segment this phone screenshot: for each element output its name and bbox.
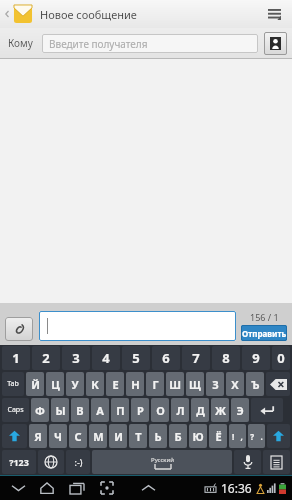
button[interactable]: Ё (209, 424, 227, 448)
button[interactable]: 3 (62, 346, 90, 370)
button[interactable]: Change language (38, 450, 64, 474)
button[interactable]: А (91, 398, 109, 422)
button[interactable]: Voice input (234, 450, 261, 474)
staticText: Ы (55, 403, 66, 418)
staticText: 3 (72, 349, 80, 367)
staticText: Ц (51, 377, 60, 392)
staticText: Ш (169, 377, 181, 392)
staticText: Ж (215, 403, 226, 418)
button[interactable]: О (151, 398, 169, 422)
button[interactable]: В (71, 398, 89, 422)
button[interactable]: :-) (66, 450, 90, 474)
button[interactable]: Ю (189, 424, 207, 448)
button[interactable]: 7 (182, 346, 210, 370)
button[interactable]: Home (32, 477, 62, 499)
button[interactable]: Р (131, 398, 149, 422)
button[interactable]: ?123 (2, 450, 36, 474)
staticText: 9 (252, 349, 260, 367)
button[interactable]: Отправить (241, 325, 287, 341)
button[interactable]: Я (29, 424, 47, 448)
button[interactable]: ! , (229, 424, 246, 448)
staticText: ? . (250, 431, 263, 442)
staticText: Tab (7, 379, 19, 389)
button[interactable]: Н (126, 372, 144, 396)
staticText: Я (34, 429, 42, 444)
button[interactable]: 5 (122, 346, 150, 370)
button[interactable]: More options (262, 2, 286, 26)
button[interactable]: Ь (149, 424, 167, 448)
button[interactable]: Tab (2, 372, 24, 396)
button[interactable]: Attach (5, 317, 33, 341)
button[interactable]: Щ (186, 372, 204, 396)
button[interactable]: 9 (242, 346, 270, 370)
button[interactable]: Space (92, 450, 232, 474)
button[interactable]: Ж (211, 398, 229, 422)
button[interactable]: Clipboard (263, 450, 290, 474)
button[interactable]: Г (146, 372, 164, 396)
staticText: Э (236, 403, 244, 418)
button[interactable]: Х (226, 372, 244, 396)
button[interactable]: Ц (46, 372, 64, 396)
staticText: 5 (132, 349, 140, 367)
button[interactable]: Up (2, 3, 139, 25)
button[interactable]: 1 (2, 346, 30, 370)
button[interactable]: К (86, 372, 104, 396)
staticText: С (74, 429, 82, 444)
button[interactable]: 4 (92, 346, 120, 370)
button[interactable]: Caps lock (2, 398, 29, 422)
button[interactable]: Ы (51, 398, 69, 422)
button[interactable]: Введите получателя (42, 34, 258, 53)
button[interactable]: ? . (248, 424, 265, 448)
button[interactable]: Ч (49, 424, 67, 448)
button[interactable]: Й (26, 372, 44, 396)
staticText: Л (176, 403, 185, 418)
button[interactable]: 8 (212, 346, 240, 370)
button[interactable]: Backspace (266, 372, 290, 396)
staticText: 4 (102, 349, 110, 367)
staticText: 6 (162, 349, 170, 367)
button[interactable]: Т (129, 424, 147, 448)
button[interactable]: И (109, 424, 127, 448)
staticText: Е (112, 377, 119, 392)
button[interactable]: Expand (134, 477, 162, 499)
button[interactable]: Б (169, 424, 187, 448)
staticText: К (91, 377, 99, 392)
staticText: ?123 (9, 456, 29, 468)
staticText: 8 (222, 349, 230, 367)
staticText: У (71, 377, 79, 392)
button[interactable]: С (69, 424, 87, 448)
button[interactable]: Screenshot (92, 477, 122, 499)
button[interactable]: Enter (251, 398, 283, 422)
button[interactable]: З (206, 372, 224, 396)
staticText: Русский (151, 456, 174, 464)
button[interactable]: Shift (267, 424, 290, 448)
staticText: Ф (35, 403, 45, 418)
button[interactable]: П (111, 398, 129, 422)
button[interactable]: Е (106, 372, 124, 396)
button[interactable]: Л (171, 398, 189, 422)
button[interactable]: У (66, 372, 84, 396)
button[interactable]: Hide keyboard (4, 477, 32, 499)
button[interactable] (39, 311, 236, 341)
staticText: Г (152, 377, 159, 392)
staticText: Ъ (251, 377, 260, 392)
button[interactable]: Ф (31, 398, 49, 422)
button[interactable]: Д (191, 398, 209, 422)
staticText: Щ (189, 377, 201, 392)
staticText: О (156, 403, 165, 418)
staticText: 16:36 (221, 480, 252, 496)
button[interactable]: 6 (152, 346, 180, 370)
button[interactable]: Э (231, 398, 249, 422)
staticText: 156 / 1 (250, 311, 279, 323)
button[interactable]: Ш (166, 372, 184, 396)
staticText: 7 (192, 349, 200, 367)
button[interactable]: 2 (32, 346, 60, 370)
button[interactable]: Shift (2, 424, 27, 448)
button[interactable]: Ъ (246, 372, 264, 396)
button[interactable]: Contacts (264, 32, 287, 55)
staticText: Б (174, 429, 182, 444)
button[interactable]: Recents (62, 477, 92, 499)
button[interactable]: 0 (272, 346, 290, 370)
button[interactable]: М (89, 424, 107, 448)
